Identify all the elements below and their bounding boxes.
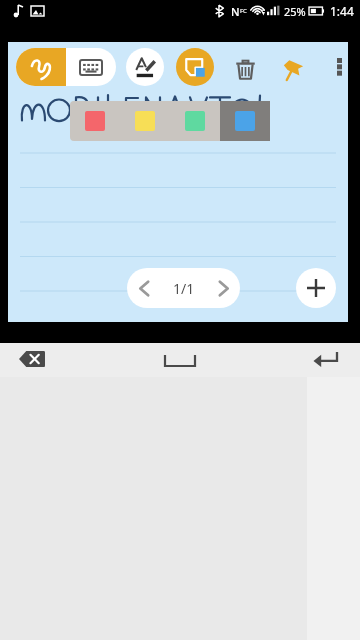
staticText: 25% [284, 4, 306, 19]
button[interactable]: More options [324, 52, 354, 82]
button[interactable]: Color 0 [70, 101, 120, 141]
staticText: 1/1 [173, 279, 195, 298]
button[interactable]: Add page [296, 268, 336, 308]
button[interactable]: Keyboard [66, 48, 116, 86]
button[interactable]: Color 3 [220, 101, 270, 141]
button[interactable]: Previous page [127, 268, 161, 308]
button[interactable]: Backspace [18, 349, 46, 369]
button[interactable]: Text style [126, 48, 164, 86]
button[interactable]: Next page [206, 268, 240, 308]
button[interactable]: Color 1 [120, 101, 170, 141]
staticText: FC [240, 7, 247, 15]
staticText: N [231, 4, 240, 19]
button[interactable]: Delete [228, 52, 262, 86]
button[interactable]: Color 2 [170, 101, 220, 141]
button[interactable]: Pen [16, 48, 66, 86]
button[interactable]: Enter [310, 348, 340, 370]
button[interactable]: Selection [176, 48, 214, 86]
button[interactable]: Space [157, 349, 203, 371]
staticText: 1:44 [330, 3, 354, 19]
button[interactable]: Pin [276, 52, 310, 86]
